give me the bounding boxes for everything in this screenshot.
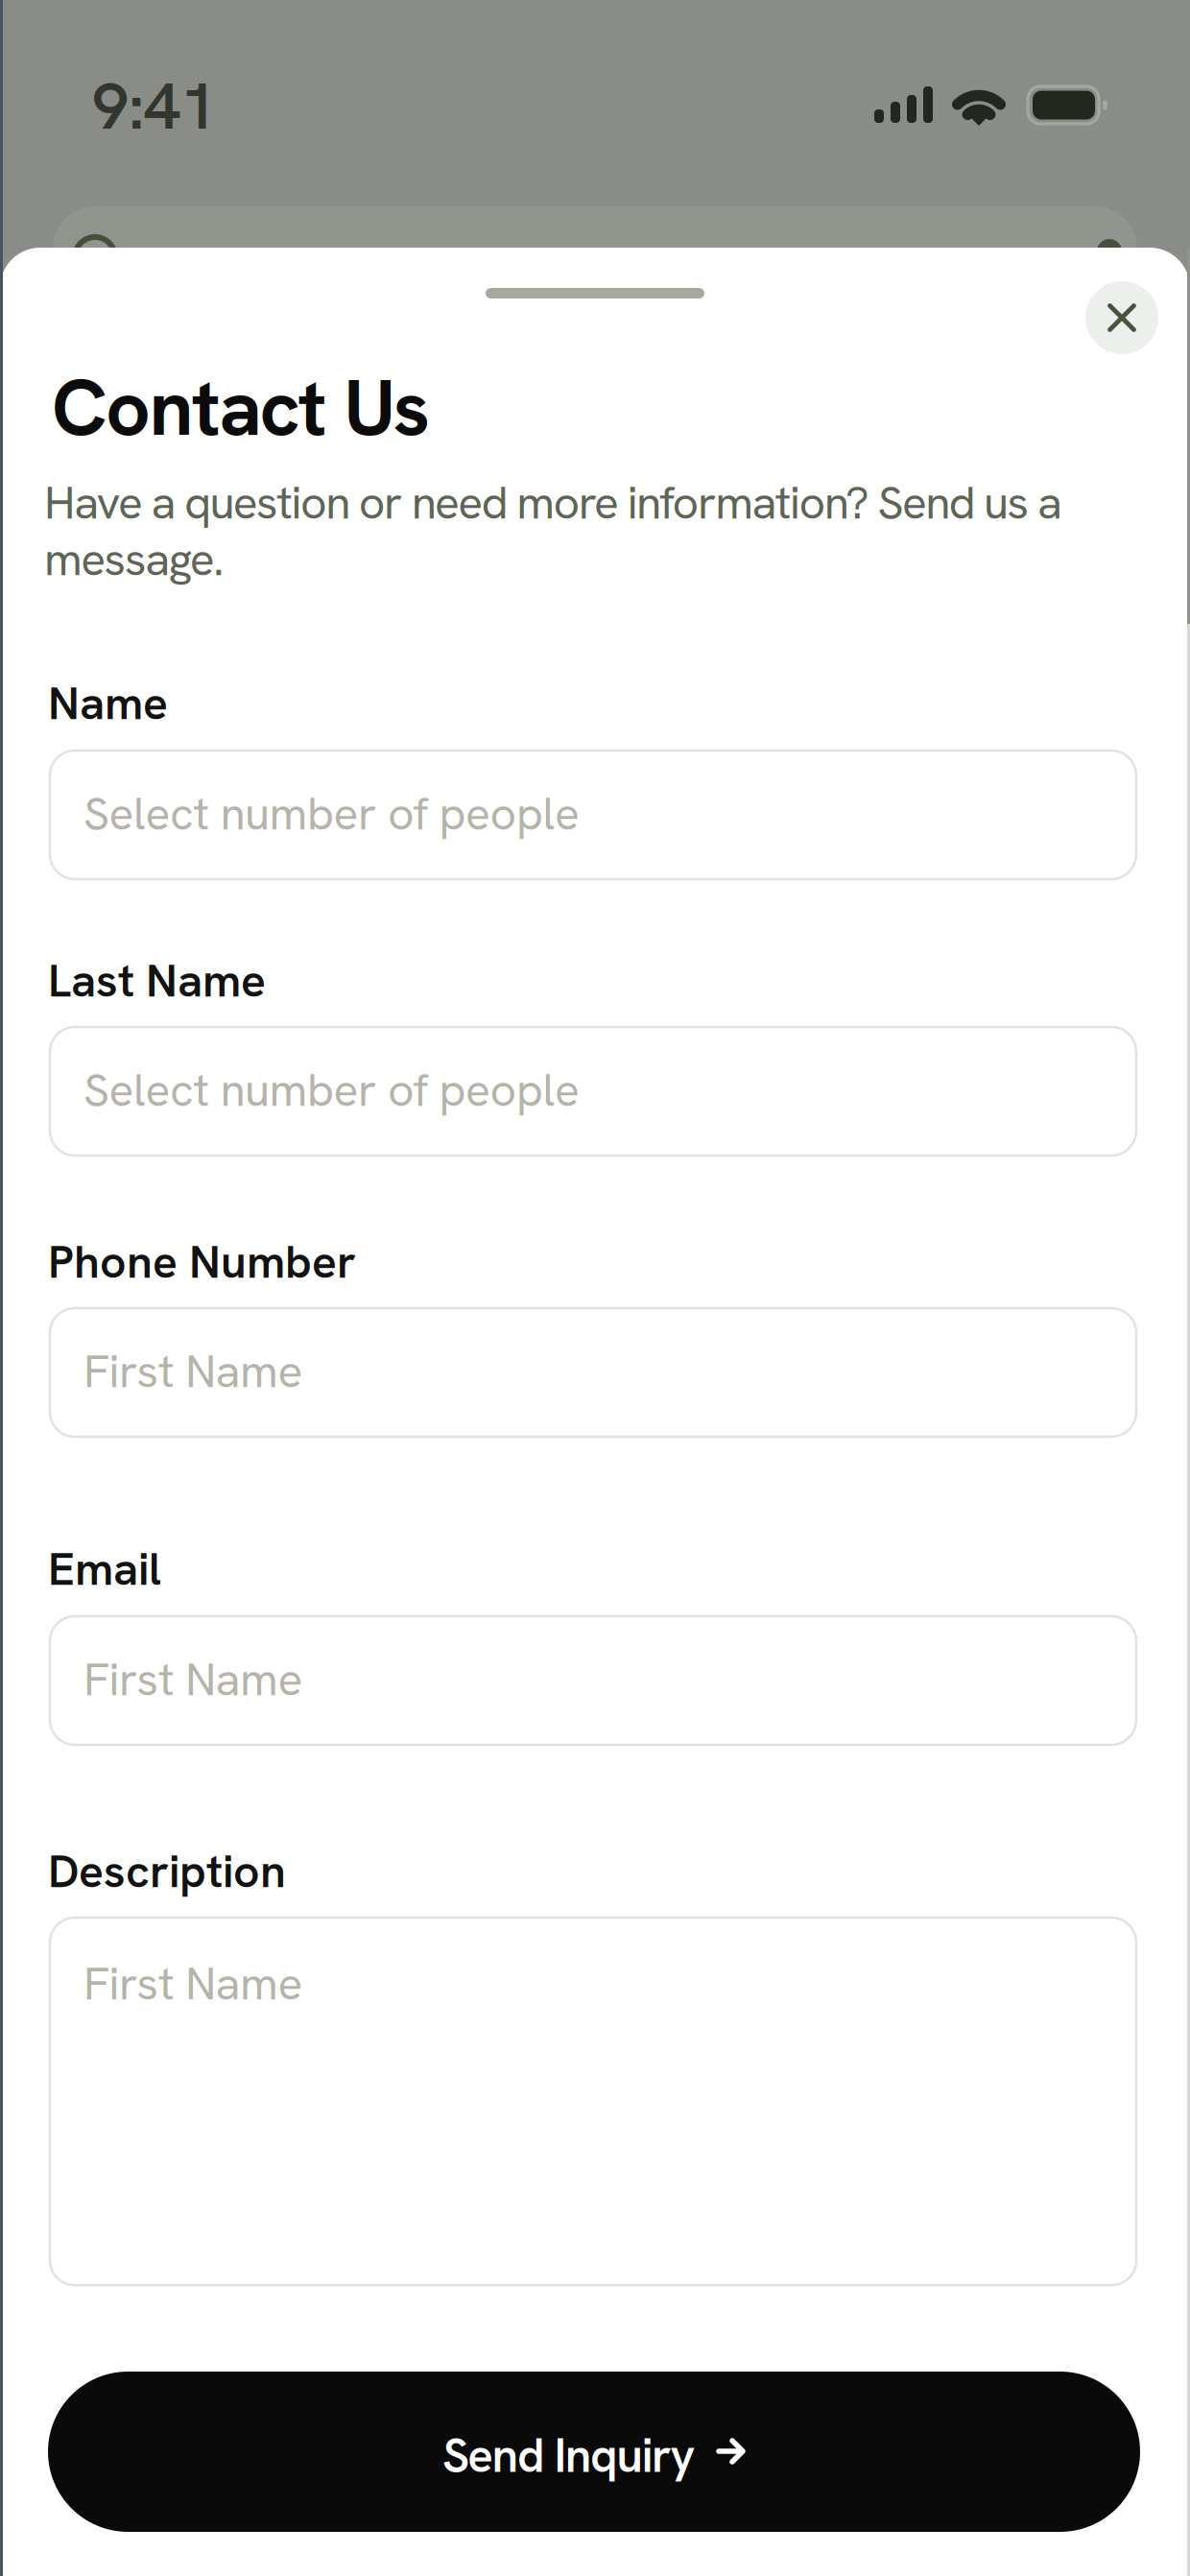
button[interactable]: First Name xyxy=(50,1308,1136,1437)
staticText: First Name xyxy=(83,1650,303,1708)
staticText: Email xyxy=(48,1539,161,1598)
staticText: First Name xyxy=(83,1342,303,1400)
staticText: Name xyxy=(48,674,168,732)
staticText: Send Inquiry xyxy=(442,2425,695,2485)
button[interactable]: Close xyxy=(1085,281,1158,354)
staticText: Description xyxy=(48,1842,286,1900)
staticText: message. xyxy=(44,530,225,588)
button[interactable]: First Name xyxy=(50,1616,1136,1745)
button[interactable]: Send Inquiry xyxy=(48,2372,1140,2532)
staticText: Contact Us xyxy=(52,358,430,457)
button[interactable]: Select number of people xyxy=(50,1027,1136,1156)
staticText: Have a question or need more information… xyxy=(44,473,1062,532)
staticText: First Name xyxy=(83,1954,303,2013)
staticText: Select number of people xyxy=(83,1061,580,1119)
button[interactable]: Select number of people xyxy=(50,751,1136,879)
staticText: Phone Number xyxy=(48,1232,356,1291)
staticText: 9:41 xyxy=(92,64,217,147)
staticText: Select number of people xyxy=(83,784,580,843)
staticText: Last Name xyxy=(48,951,266,1010)
button[interactable]: First Name xyxy=(50,1918,1136,2285)
